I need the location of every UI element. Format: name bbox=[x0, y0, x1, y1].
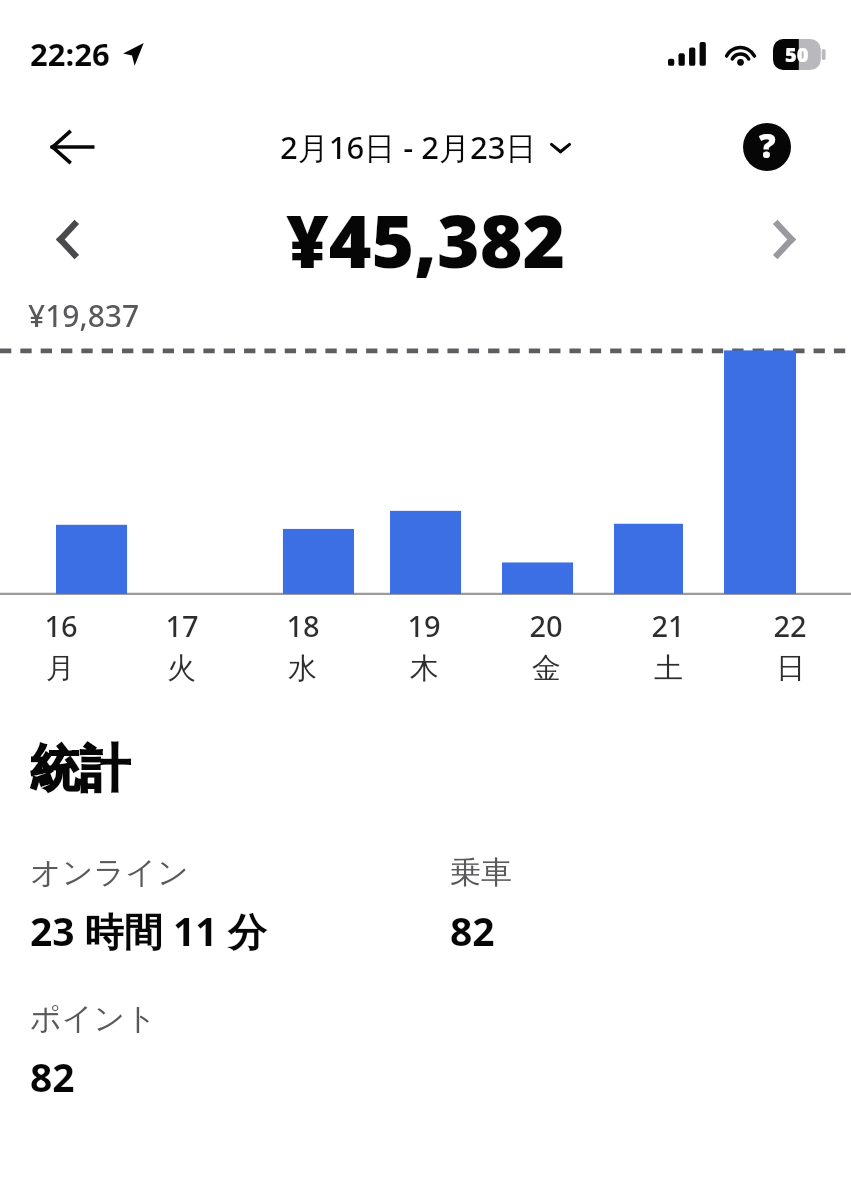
staticText: 82 bbox=[450, 904, 495, 957]
button[interactable]: Back bbox=[40, 115, 104, 179]
staticText: 18 bbox=[286, 606, 320, 645]
staticText: 20 bbox=[529, 606, 563, 645]
staticText: 金 bbox=[532, 650, 561, 687]
button[interactable]: 16 bbox=[0, 596, 121, 687]
staticText: 23 時間 11 分 bbox=[30, 904, 267, 957]
button[interactable]: ポイント bbox=[30, 999, 450, 1103]
staticText: 22 bbox=[773, 606, 807, 645]
button[interactable]: 19 bbox=[363, 596, 485, 687]
button[interactable]: 22 bbox=[729, 596, 851, 687]
staticText: 17 bbox=[165, 606, 199, 645]
staticText: 日 bbox=[776, 650, 805, 687]
staticText: 火 bbox=[167, 650, 196, 687]
button[interactable]: Next week bbox=[755, 210, 813, 268]
staticText: 統計 bbox=[30, 738, 130, 801]
staticText: 2月16日 - 2月23日 bbox=[280, 126, 537, 168]
button[interactable]: 18 bbox=[242, 596, 363, 687]
staticText: 土 bbox=[654, 650, 683, 687]
button[interactable]: Help bbox=[738, 118, 796, 176]
button[interactable]: 17 bbox=[121, 596, 242, 687]
staticText: 50 bbox=[785, 41, 809, 68]
staticText: 21 bbox=[651, 606, 685, 645]
staticText: 木 bbox=[410, 650, 439, 687]
staticText: 19 bbox=[407, 606, 441, 645]
staticText: ¥45,382 bbox=[286, 190, 566, 289]
staticText: 22:26 bbox=[30, 33, 110, 75]
staticText: 82 bbox=[30, 1050, 75, 1103]
staticText: 月 bbox=[46, 650, 75, 687]
button[interactable]: Previous week bbox=[38, 210, 96, 268]
staticText: 16 bbox=[44, 606, 78, 645]
staticText: ポイント bbox=[30, 999, 157, 1038]
staticText: 水 bbox=[288, 650, 317, 687]
button[interactable]: 20 bbox=[485, 596, 607, 687]
staticText: オンライン bbox=[30, 853, 189, 892]
button[interactable]: 2月16日 - 2月23日 bbox=[272, 122, 579, 172]
button[interactable]: オンライン bbox=[30, 853, 450, 957]
staticText: ? bbox=[759, 123, 776, 168]
staticText: 乗車 bbox=[450, 853, 512, 892]
button[interactable]: 21 bbox=[607, 596, 729, 687]
button[interactable]: 乗車 bbox=[450, 853, 851, 957]
staticText: ¥19,837 bbox=[28, 295, 140, 336]
